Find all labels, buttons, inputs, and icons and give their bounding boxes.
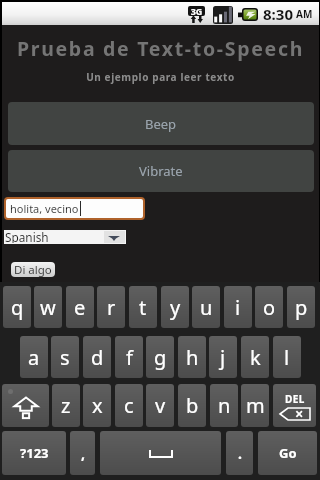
button[interactable]: a [20,336,48,378]
staticText: p [295,294,308,321]
staticText: d [91,344,104,371]
staticText: Prueba de Text-to-Speech [2,35,319,62]
button[interactable]: l [273,336,301,378]
button[interactable]: p [287,286,315,328]
button[interactable]: Vibrate [8,150,314,192]
staticText: y [170,294,181,321]
button[interactable]: j [209,336,237,378]
staticText: holita, vecino [10,201,79,216]
staticText: b [186,392,199,419]
staticText: Go [279,444,297,462]
staticText: l [284,344,290,371]
staticText: f [126,344,133,371]
staticText: u [200,294,213,321]
button[interactable]: Shift [2,384,49,427]
staticText: h [186,344,199,371]
staticText: 8:30 [263,4,293,24]
button[interactable]: z [52,384,80,427]
staticText: Di algo [14,262,52,277]
button[interactable]: Space [100,431,221,475]
button[interactable]: ?123 [2,431,66,475]
staticText: r [107,294,116,321]
button[interactable]: i [224,286,252,328]
staticText: n [218,392,231,419]
button[interactable]: x [83,384,111,427]
staticText: Spanish [5,229,49,243]
button[interactable]: u [192,286,220,328]
button[interactable]: g [146,336,174,378]
staticText: e [74,294,86,321]
staticText: j [220,344,226,371]
staticText: 3G [188,5,205,17]
staticText: Beep [145,115,177,133]
button[interactable]: w [34,286,62,328]
button[interactable]: , [70,431,95,475]
staticText: z [61,392,71,419]
staticText: k [250,344,261,371]
button[interactable]: c [115,384,143,427]
button[interactable]: Delete [273,384,316,427]
button[interactable]: Go [258,431,317,475]
button[interactable]: o [255,286,283,328]
staticText: g [154,344,167,371]
button[interactable]: m [241,384,269,427]
button[interactable]: y [161,286,189,328]
staticText: i [235,294,241,321]
staticText: c [124,392,134,419]
button[interactable]: Di algo [11,262,55,277]
button[interactable]: q [3,286,31,328]
button[interactable]: e [66,286,94,328]
staticText: q [11,294,24,321]
staticText: Vibrate [139,162,183,180]
button[interactable]: d [83,336,111,378]
button[interactable]: t [129,286,157,328]
staticText: AM [296,7,313,21]
staticText: x [92,392,103,419]
staticText: DEL [285,392,305,406]
button[interactable]: k [241,336,269,378]
button[interactable]: b [178,384,206,427]
button[interactable]: holita, vecino [6,199,143,218]
staticText: t [139,294,147,321]
staticText: a [28,344,40,371]
button[interactable]: . [226,431,253,475]
button[interactable]: s [51,336,79,378]
staticText: w [40,294,56,321]
staticText: m [246,392,265,419]
button[interactable]: Beep [8,102,314,145]
button[interactable]: r [97,286,125,328]
staticText: ?123 [20,444,49,462]
button[interactable]: Spanish [4,230,126,244]
staticText: . [238,444,242,463]
staticText: , [81,444,85,463]
staticText: s [60,344,70,371]
staticText: Un ejemplo para leer texto [2,70,319,84]
staticText: o [263,294,276,321]
button[interactable]: h [178,336,206,378]
button[interactable]: f [115,336,143,378]
staticText: v [155,392,166,419]
button[interactable]: v [146,384,174,427]
button[interactable]: n [210,384,238,427]
